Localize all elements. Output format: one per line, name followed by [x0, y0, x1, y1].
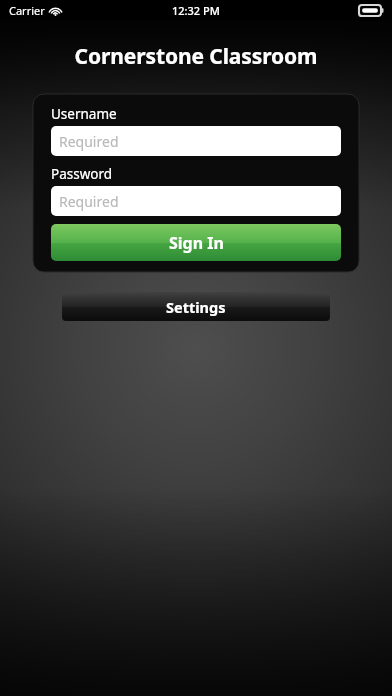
staticText: Required [59, 192, 119, 211]
staticText: Sign In [169, 232, 224, 254]
staticText: 12:32 PM [172, 3, 220, 18]
staticText: Username [51, 105, 117, 123]
button[interactable]: Settings [62, 292, 330, 321]
staticText: Carrier [9, 3, 45, 18]
staticText: Cornerstone Classroom [0, 42, 392, 71]
staticText: Settings [166, 297, 226, 317]
button[interactable]: Required [51, 126, 341, 156]
button[interactable]: Required [51, 186, 341, 216]
button[interactable]: Sign In [51, 224, 341, 261]
staticText: Password [51, 165, 113, 183]
staticText: Required [59, 132, 119, 151]
